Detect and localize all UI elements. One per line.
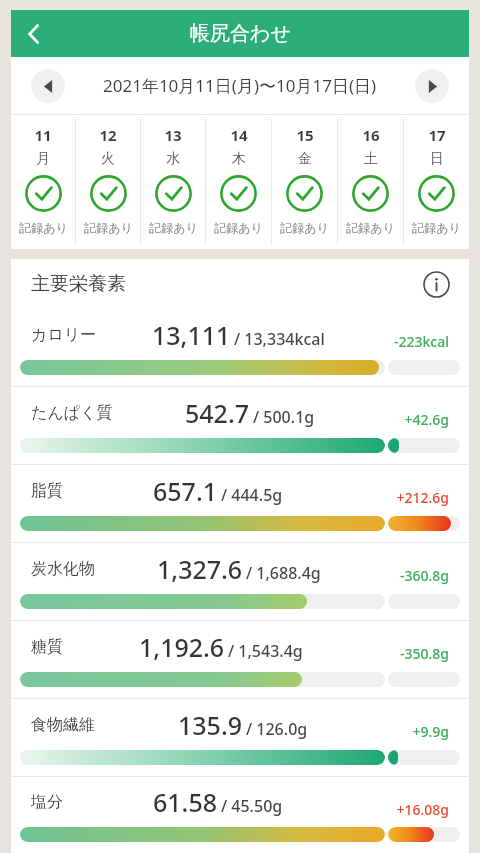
staticText: 14 [230,125,248,145]
button[interactable]: Back [11,11,57,57]
staticText: +9.9g [412,722,449,741]
staticText: 水 [166,150,180,168]
staticText: 炭水化物 [31,559,95,579]
staticText: たんぱく質 [31,403,113,423]
button[interactable]: 糖質 [11,621,469,698]
staticText: 日 [430,150,444,168]
staticText: / 13,334kcal [234,328,325,350]
staticText: / 444.5g [221,484,283,506]
staticText: 記録あり [214,220,263,235]
staticText: 記録あり [149,220,198,235]
staticText: 土 [364,150,378,168]
staticText: 帳尻合わせ [190,21,291,46]
staticText: 記録あり [19,220,68,235]
staticText: 2021年10月11日(月)〜10月17日(日) [103,74,377,97]
button[interactable]: たんぱく質 [11,387,469,464]
staticText: 11 [34,125,52,145]
staticText: -223kcal [393,332,449,351]
staticText: 木 [232,150,246,168]
button[interactable]: 13 [141,115,205,249]
button[interactable]: 16 [338,115,403,249]
button[interactable]: Previous week [31,69,65,103]
button[interactable]: 14 [206,115,271,249]
staticText: 13 [164,125,182,145]
staticText: 12 [99,125,117,145]
staticText: +212.6g [396,488,449,507]
button[interactable]: 15 [272,115,337,249]
staticText: 主要栄養素 [31,272,126,296]
staticText: / 500.1g [253,406,315,428]
staticText: / 1,688.4g [246,562,321,584]
staticText: 1,192.6 [139,630,225,664]
staticText: 542.7 [185,396,250,430]
staticText: 17 [428,125,446,145]
staticText: -350.8g [399,644,449,663]
staticText: 糖質 [31,637,63,657]
staticText: 火 [101,150,115,168]
button[interactable]: 12 [76,115,140,249]
button[interactable]: 脂質 [11,465,469,542]
staticText: 657.1 [153,474,218,508]
button[interactable]: 17 [404,115,469,249]
staticText: 13,111 [152,318,231,352]
button[interactable]: カロリー [11,309,469,386]
staticText: / 1,543.4g [228,640,303,662]
staticText: 食物繊維 [31,715,95,735]
staticText: 金 [298,150,312,168]
staticText: 61.58 [153,785,218,819]
button[interactable]: 塩分 [11,777,469,853]
staticText: 月 [36,150,50,168]
staticText: 記録あり [346,220,395,235]
staticText: 1,327.6 [157,552,243,586]
staticText: -360.8g [399,566,449,585]
staticText: +16.08g [396,800,449,819]
staticText: 16 [362,125,380,145]
staticText: 記録あり [84,220,133,235]
button[interactable]: Next week [415,69,449,103]
staticText: 塩分 [31,792,63,812]
staticText: カロリー [31,325,97,345]
button[interactable]: 11 [11,115,75,249]
button[interactable]: 食物繊維 [11,699,469,776]
button[interactable]: 炭水化物 [11,543,469,620]
staticText: 脂質 [31,481,63,501]
staticText: / 126.0g [246,718,308,740]
button[interactable]: Information [417,265,455,303]
staticText: 15 [296,125,314,145]
staticText: 135.9 [178,708,243,742]
staticText: 記録あり [280,220,329,235]
staticText: 記録あり [412,220,461,235]
staticText: / 45.50g [221,795,283,817]
staticText: +42.6g [404,410,449,429]
